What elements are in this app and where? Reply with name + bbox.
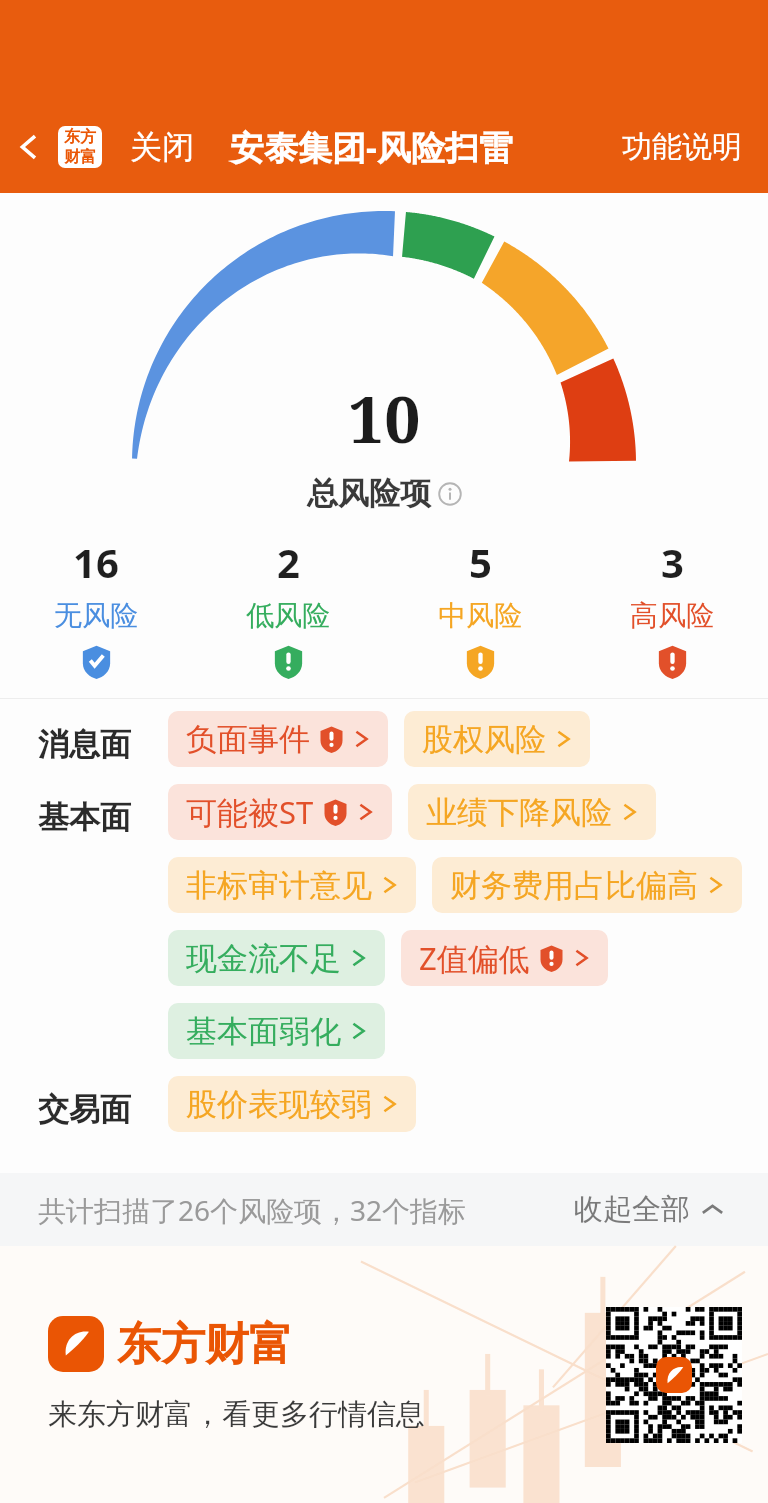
button[interactable]: 基本面弱化 [168,1003,385,1059]
staticText: 安泰集团-风险扫雷 [230,124,513,170]
staticText: 财务费用占比偏高 [450,866,698,905]
staticText: 收起全部 [574,1191,690,1228]
button[interactable]: 5 [384,531,576,683]
button[interactable]: 股价表现较弱 [168,1076,416,1132]
button[interactable]: 业绩下降风险 [408,784,656,840]
button[interactable]: 16 [0,531,192,683]
button[interactable]: 股权风险 [404,711,590,767]
staticText: 现金流不足 [186,939,341,978]
staticText: 2 [277,535,300,589]
staticText: 可能被ST [186,791,314,833]
staticText: 来东方财富，看更多行情信息 [48,1396,425,1433]
button[interactable]: 2 [192,531,384,683]
staticText: 3 [661,535,684,589]
button[interactable]: 现金流不足 [168,930,385,986]
staticText: 无风险 [54,598,138,633]
staticText: 关闭 [130,127,194,167]
staticText: 基本面 [38,798,131,837]
button[interactable]: East Money logo [58,126,102,168]
staticText: 非标审计意见 [186,866,372,905]
button[interactable]: 3 [576,531,768,683]
staticText: 共计扫描了26个风险项，32个指标 [38,1191,467,1229]
button[interactable]: 财务费用占比偏高 [432,857,742,913]
staticText: 股价表现较弱 [186,1085,372,1124]
staticText: 交易面 [38,1090,131,1129]
staticText: 东方 [64,127,96,147]
button[interactable]: 非标审计意见 [168,857,416,913]
staticText: 中风险 [438,598,522,633]
button[interactable]: 功能说明 [616,118,748,176]
staticText: 16 [73,535,119,589]
button[interactable]: Z值偏低 [401,930,608,986]
staticText: 财富 [64,147,96,167]
staticText: 基本面弱化 [186,1012,341,1051]
staticText: 负面事件 [186,720,310,759]
staticText: 低风险 [246,598,330,633]
staticText: 股权风险 [422,720,546,759]
staticText: 总风险项 [307,474,431,513]
staticText: 10 [348,375,421,462]
staticText: Z值偏低 [419,937,530,979]
button[interactable]: 可能被ST [168,784,392,840]
button[interactable]: 负面事件 [168,711,388,767]
staticText: 东方财富 [117,1317,293,1372]
button[interactable]: 关闭 [126,117,198,177]
button[interactable]: 收起全部 [568,1185,730,1234]
staticText: 5 [469,535,492,589]
staticText: 业绩下降风险 [426,793,612,832]
staticText: 消息面 [38,725,131,764]
other: QR code [606,1307,742,1443]
button[interactable]: Back [0,115,58,179]
staticText: 高风险 [630,598,714,633]
staticText: 功能说明 [622,128,742,166]
